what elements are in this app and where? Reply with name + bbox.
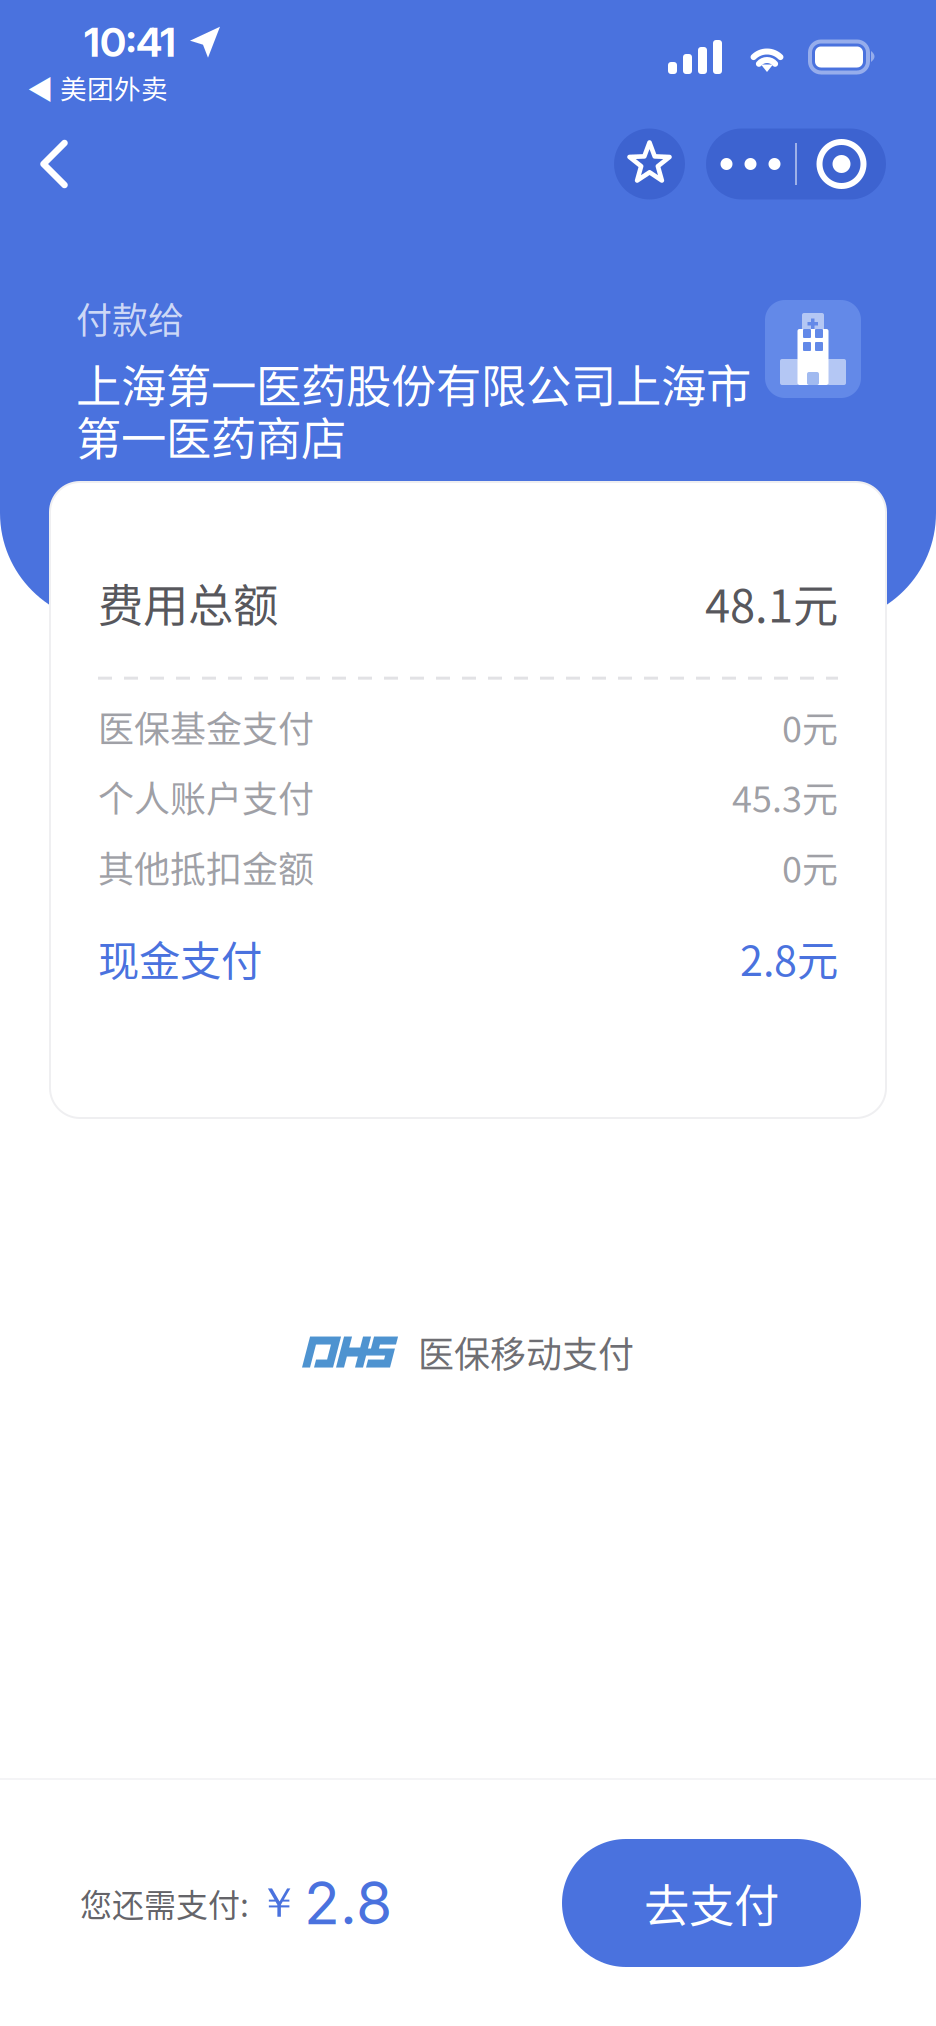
staticText: 2.8 [304, 1867, 392, 1938]
button[interactable]: Back [12, 122, 96, 206]
button[interactable]: 去支付 [562, 1839, 861, 1967]
staticText: 45.3元 [732, 771, 838, 823]
staticText: 现金支付 [98, 928, 262, 988]
staticText: 0元 [782, 841, 838, 893]
staticText: 您还需支付: [80, 1880, 249, 1926]
staticText: 医保基金支付 [98, 701, 314, 753]
staticText: ◀ 美团外卖 [27, 68, 168, 107]
button[interactable]: Close [797, 128, 886, 199]
staticText: 去支付 [644, 1870, 779, 1936]
staticText: 上海第一医药股份有限公司上海市第一医药商店 [76, 357, 751, 462]
staticText: 0元 [782, 701, 838, 753]
staticText: 48.1元 [705, 570, 838, 636]
staticText: 医保移动支付 [418, 1326, 634, 1378]
staticText: 其他抵扣金额 [98, 841, 314, 893]
staticText: 10:41 [84, 18, 176, 66]
staticText: 2.8元 [740, 928, 838, 988]
staticText: 费用总额 [98, 570, 278, 636]
staticText: 个人账户支付 [98, 771, 314, 823]
staticText: ￥ [258, 1877, 299, 1929]
staticText: 付款给 [76, 292, 184, 344]
button[interactable]: Favorite [614, 128, 685, 199]
button[interactable]: More [706, 128, 795, 199]
